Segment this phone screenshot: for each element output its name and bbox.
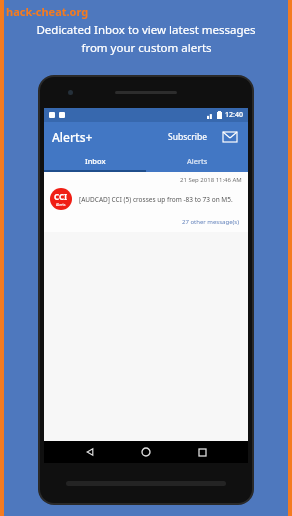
button[interactable]: Home	[136, 442, 156, 462]
button[interactable]: Messages	[220, 127, 240, 147]
staticText: Subscribe	[168, 131, 208, 143]
staticText: 27 other message(s)	[182, 218, 240, 226]
staticText: 21 Sep 2018 11:46 AM	[180, 176, 242, 184]
button[interactable]: Recents	[192, 442, 212, 462]
staticText: CCI	[54, 191, 68, 202]
staticText: Alerts+	[52, 129, 93, 145]
staticText: Alerts	[56, 202, 66, 207]
button[interactable]: 21 Sep 2018 11:46 AM	[44, 172, 248, 232]
staticText: Alerts	[187, 156, 208, 166]
staticText: Dedicated Inbox to view latest messages	[36, 22, 256, 38]
button[interactable]: Inbox	[44, 152, 146, 170]
staticText: hack-cheat.org	[6, 4, 89, 19]
button[interactable]: Alerts	[146, 152, 248, 170]
button[interactable]: Subscribe	[164, 128, 212, 146]
staticText: Inbox	[85, 156, 106, 166]
staticText: 12:40	[225, 110, 243, 120]
button[interactable]: 27 other message(s)	[180, 216, 242, 228]
staticText: from your custom alerts	[81, 40, 212, 56]
button[interactable]: Back	[80, 442, 100, 462]
staticText: [AUDCAD] CCI (5) crosses up from -83 to …	[79, 195, 233, 204]
